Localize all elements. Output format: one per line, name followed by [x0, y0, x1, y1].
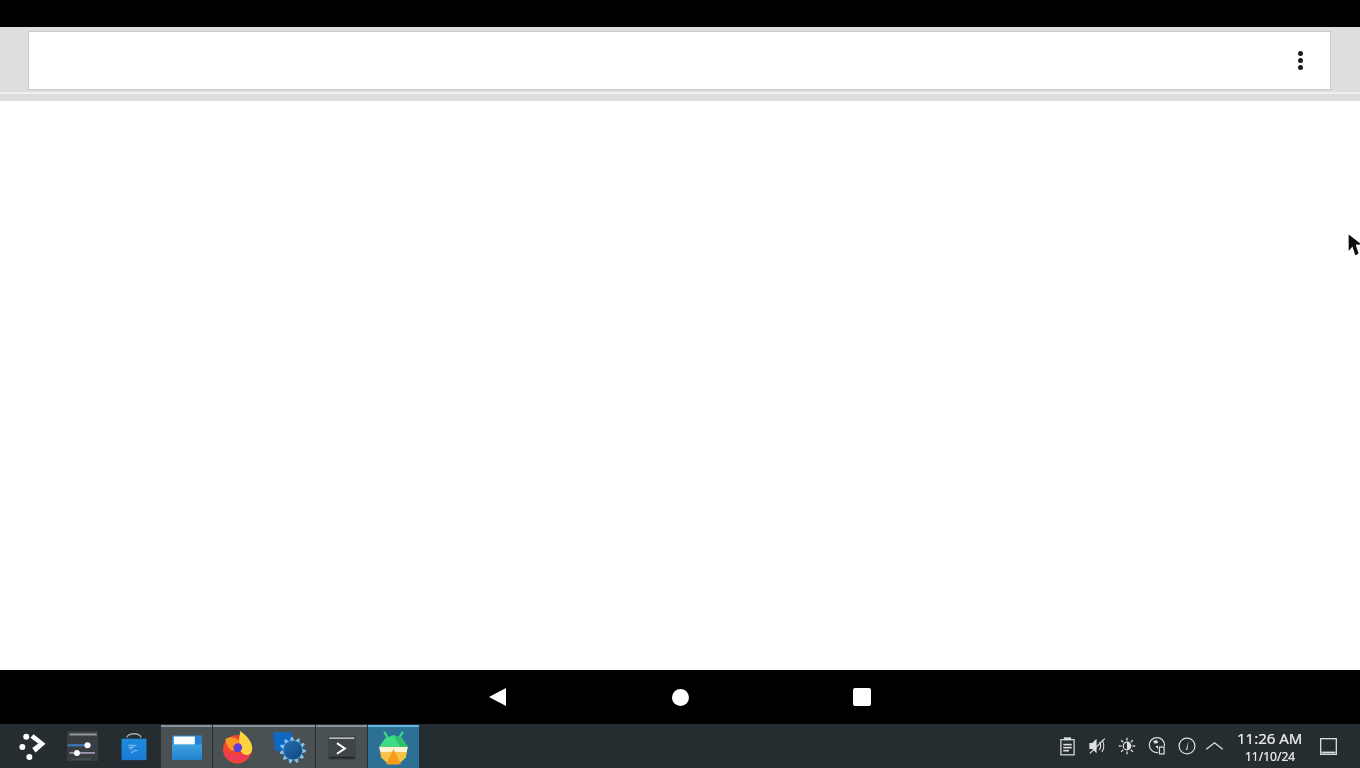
button[interactable]: Volume muted: [1083, 724, 1112, 768]
button[interactable]: More options: [29, 32, 1330, 89]
button[interactable]: Back: [477, 670, 517, 724]
button[interactable]: Brightness: [1112, 724, 1141, 768]
button[interactable]: Terminal: [316, 725, 367, 768]
button[interactable]: Performance: [1172, 724, 1201, 768]
button[interactable]: Recent apps: [842, 670, 882, 724]
button[interactable]: Firefox: [213, 725, 264, 768]
button[interactable]: Network: [1143, 724, 1172, 768]
button[interactable]: Notifications: [1314, 724, 1342, 768]
staticText: 11/10/24: [1245, 748, 1296, 764]
button[interactable]: Settings: [264, 725, 315, 768]
button[interactable]: Microsoft Store: [112, 724, 156, 768]
button[interactable]: Home: [660, 670, 700, 724]
button[interactable]: Start: [11, 724, 55, 768]
button[interactable]: 11:26 AM: [1232, 724, 1308, 768]
button[interactable]: File Explorer: [161, 725, 212, 768]
button[interactable]: More options: [1276, 32, 1324, 89]
button[interactable]: Clipboard: [1053, 724, 1082, 768]
button[interactable]: Android Studio: [368, 725, 419, 768]
button[interactable]: Show hidden icons: [1200, 724, 1229, 768]
button[interactable]: Search: [60, 724, 104, 768]
staticText: 11:26 AM: [1237, 728, 1303, 748]
